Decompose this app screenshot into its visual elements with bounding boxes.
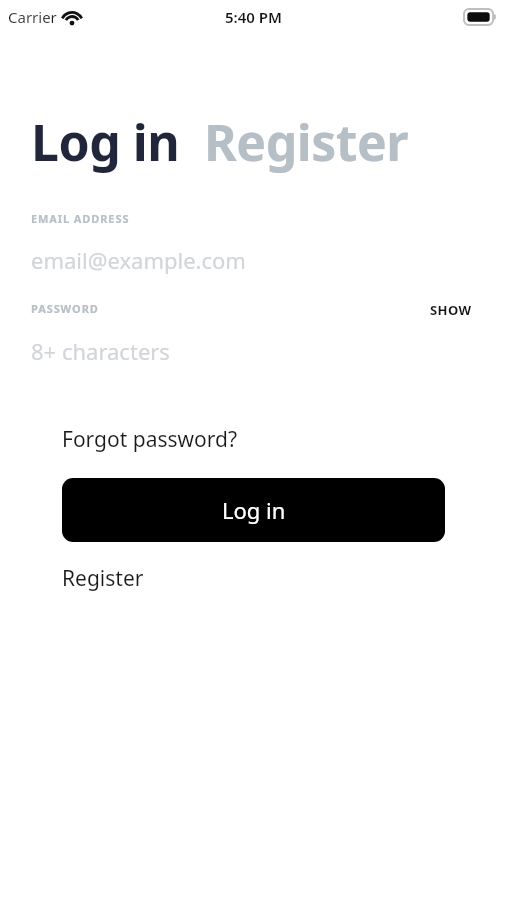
staticText: Log in [222, 495, 286, 525]
staticText: Carrier [8, 7, 57, 27]
staticText: PASSWORD [31, 301, 99, 316]
button[interactable]: SHOW [420, 296, 482, 324]
staticText: Forgot password? [62, 425, 238, 454]
button[interactable]: 8+ characters [31, 331, 411, 371]
staticText: Log in [31, 108, 180, 176]
staticText: EMAIL ADDRESS [31, 211, 130, 226]
staticText: 5:40 PM [0, 7, 507, 27]
staticText: 8+ characters [31, 336, 170, 366]
button[interactable]: email@example.com [31, 240, 461, 280]
button[interactable]: Log in [62, 478, 445, 542]
button[interactable]: Log in [31, 108, 180, 176]
button[interactable]: Register [62, 563, 144, 593]
staticText: email@example.com [31, 245, 246, 275]
staticText: SHOW [430, 301, 472, 319]
button[interactable]: Register [204, 108, 409, 176]
staticText: Register [62, 564, 144, 593]
button[interactable]: Forgot password? [62, 424, 238, 454]
staticText: Register [204, 108, 409, 176]
